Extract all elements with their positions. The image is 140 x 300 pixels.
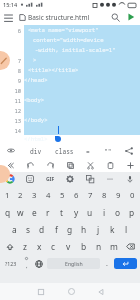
button[interactable]: x (32, 238, 46, 255)
staticText: c (51, 241, 56, 252)
button[interactable]: Undo (20, 158, 40, 172)
button[interactable]: j (91, 221, 105, 238)
staticText: s (26, 224, 31, 235)
staticText: e (32, 207, 37, 218)
staticText: </html> (24, 135, 48, 143)
button[interactable]: Cut (80, 158, 100, 172)
staticText: a (12, 224, 17, 235)
button[interactable]: l (119, 221, 133, 238)
button[interactable]: Share (118, 143, 140, 158)
button[interactable]: Shift (1, 238, 18, 255)
button[interactable]: Period (101, 255, 113, 272)
button[interactable]: Google (0, 172, 20, 186)
staticText: t (60, 207, 64, 218)
button[interactable]: n (91, 238, 106, 255)
button[interactable]: y (69, 204, 83, 221)
button[interactable]: c (46, 238, 61, 255)
button[interactable]: 3 (27, 187, 41, 204)
button[interactable]: Backspace (121, 238, 139, 255)
button[interactable]: 2 (14, 187, 27, 204)
staticText: f (55, 224, 58, 235)
staticText: > (33, 56, 37, 64)
button[interactable]: Emoji (20, 172, 40, 186)
button[interactable]: GIF (40, 172, 60, 186)
button[interactable]: Translate (80, 172, 100, 186)
button[interactable]: div (22, 143, 50, 158)
button[interactable]: p (125, 204, 139, 221)
button[interactable]: 6 (69, 187, 83, 204)
button[interactable]: h (77, 221, 91, 238)
button[interactable]: z (18, 238, 32, 255)
button[interactable]: 9 (111, 187, 125, 204)
button[interactable]: Home (56, 283, 86, 300)
button[interactable]: Recents (25, 283, 56, 300)
button[interactable]: q (1, 204, 14, 221)
button[interactable]: m (106, 238, 121, 255)
button[interactable]: Comma (20, 255, 32, 272)
staticText: 10 (14, 87, 21, 94)
button[interactable]: Settings (60, 172, 80, 186)
button[interactable]: 7 (83, 187, 97, 204)
button[interactable]: Menu (0, 9, 16, 25)
button[interactable]: English (47, 258, 100, 269)
button[interactable]: Back (86, 283, 116, 300)
staticText: 12 (14, 107, 21, 114)
button[interactable]: Edit (0, 165, 10, 183)
button[interactable]: 4 (41, 187, 55, 204)
staticText: div (30, 147, 42, 155)
staticText: u (87, 207, 93, 218)
button[interactable]: k (105, 221, 119, 238)
button[interactable]: 8 (97, 187, 111, 204)
button[interactable]: Language (32, 255, 46, 272)
button[interactable]: Redo (40, 158, 60, 172)
button[interactable]: v (61, 238, 76, 255)
button[interactable]: = (78, 143, 98, 158)
button[interactable]: f (49, 221, 63, 238)
staticText: z (23, 241, 27, 252)
button[interactable]: w (14, 204, 27, 221)
staticText: 1 (5, 190, 10, 201)
button[interactable]: Enter (114, 258, 137, 269)
staticText: y (74, 207, 79, 218)
staticText: GIF (46, 176, 55, 183)
button[interactable]: Add (120, 158, 140, 172)
button[interactable]: Toggle (0, 143, 22, 158)
button[interactable]: Voice input (120, 172, 140, 186)
staticText: k (110, 224, 115, 235)
button[interactable]: Search (107, 9, 123, 25)
button[interactable]: Run (123, 9, 139, 25)
button[interactable]: g (63, 221, 77, 238)
staticText: , (26, 262, 28, 270)
button[interactable]: a (7, 221, 21, 238)
button[interactable]: 0 (125, 187, 139, 204)
staticText: 6 (74, 190, 79, 201)
button[interactable]: Paste (100, 158, 120, 172)
button[interactable]: s (21, 221, 35, 238)
button[interactable]: t (55, 204, 69, 221)
staticText: class (55, 147, 74, 155)
button[interactable]: i (97, 204, 111, 221)
button[interactable]: "" (98, 143, 118, 158)
staticText: r (46, 207, 50, 218)
button[interactable]: 5 (55, 187, 69, 204)
staticText: 13 (14, 117, 21, 124)
staticText: o (115, 207, 121, 218)
button[interactable]: d (35, 221, 49, 238)
button[interactable]: ?123 (2, 255, 20, 272)
button[interactable]: r (41, 204, 55, 221)
button[interactable]: b (76, 238, 91, 255)
button[interactable]: Collapse (0, 158, 20, 172)
button[interactable]: Selection handle (55, 136, 61, 142)
button[interactable]: More (100, 172, 120, 186)
staticText: h (81, 224, 87, 235)
button[interactable]: e (27, 204, 41, 221)
staticText: 8 (102, 190, 107, 201)
staticText: ?123 (5, 260, 17, 267)
button[interactable]: class (50, 143, 78, 158)
button[interactable]: u (83, 204, 97, 221)
button[interactable]: 1 (1, 187, 14, 204)
button[interactable]: Copy (60, 158, 80, 172)
staticText: x (37, 241, 42, 252)
button[interactable]: Edit (0, 51, 10, 70)
button[interactable]: o (111, 204, 125, 221)
